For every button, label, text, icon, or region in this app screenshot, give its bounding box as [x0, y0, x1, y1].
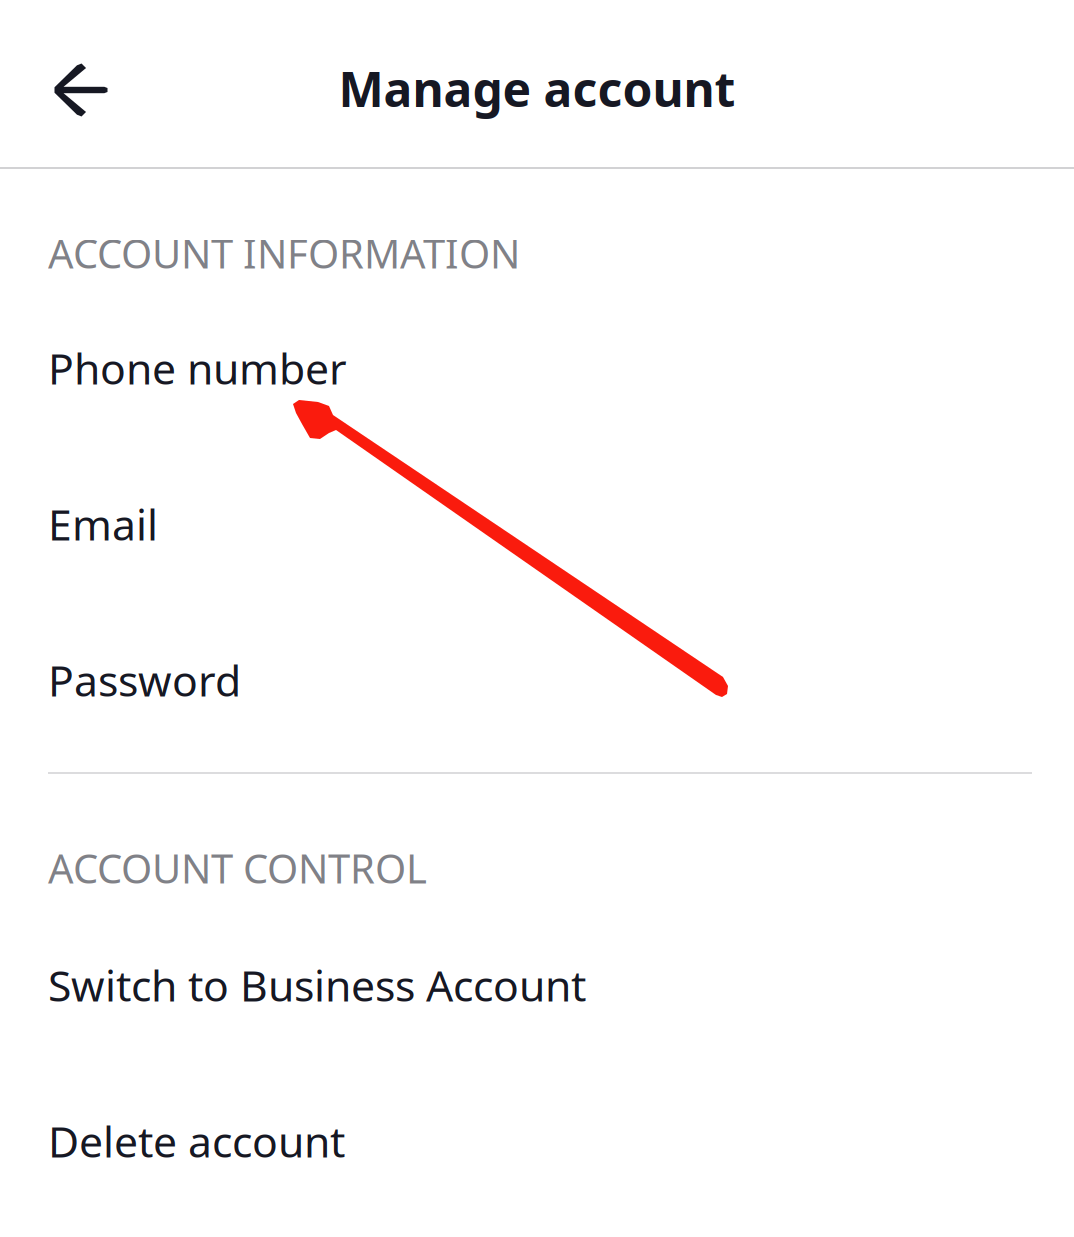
staticText: Password [48, 652, 241, 708]
button[interactable]: Switch to Business Account [0, 907, 1074, 1063]
button[interactable]: Password [0, 602, 1074, 758]
staticText: Switch to Business Account [48, 957, 586, 1013]
button[interactable]: Delete account [0, 1063, 1074, 1219]
button[interactable]: Back [26, 35, 136, 145]
button[interactable]: Phone number [0, 290, 1074, 446]
staticText: Manage account [338, 57, 735, 120]
button[interactable]: Email [0, 446, 1074, 602]
staticText: Phone number [48, 340, 347, 396]
staticText: ACCOUNT INFORMATION [48, 226, 520, 279]
staticText: ACCOUNT CONTROL [48, 841, 427, 894]
staticText: Delete account [48, 1113, 345, 1169]
staticText: Email [48, 496, 158, 552]
